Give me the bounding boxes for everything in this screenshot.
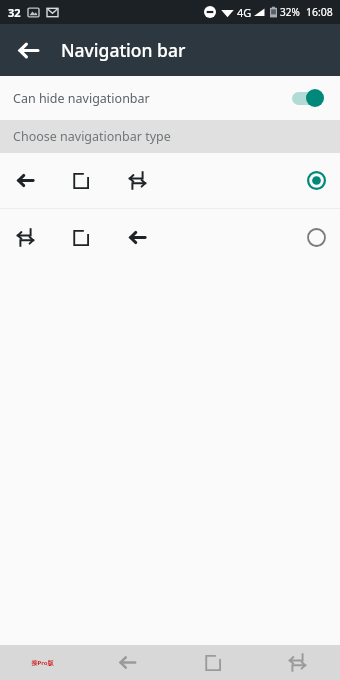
staticText: 4G [237,5,252,20]
button[interactable]: Navigation bar layout back, home, recent… [0,153,340,208]
button[interactable]: Can hide navigationbar [0,76,340,120]
button[interactable]: Home [170,645,255,680]
button[interactable]: Navigation bar layout recents, home, bac… [0,209,340,266]
button[interactable]: Recent apps [255,645,340,680]
staticText: 接Pro版 [31,659,54,667]
staticText: Choose navigationbar type [13,128,171,145]
staticText: Can hide navigationbar [13,90,150,107]
staticText: Navigation bar [61,38,186,62]
staticText: 32 [8,5,21,20]
staticText: 16:08 [306,5,333,19]
staticText: 32% [280,5,300,19]
button[interactable]: Back [85,645,170,680]
button[interactable]: Back [8,30,48,70]
